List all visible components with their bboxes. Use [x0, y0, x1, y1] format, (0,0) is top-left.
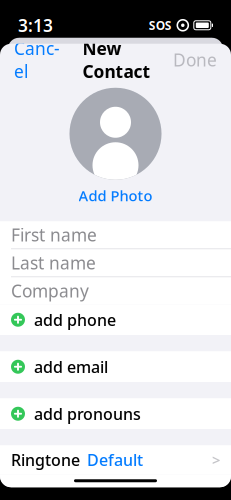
button[interactable]: Ringtone	[0, 445, 231, 474]
button[interactable]: Last name	[0, 249, 231, 276]
button[interactable]: Done	[163, 41, 227, 78]
staticText: Company	[11, 279, 89, 302]
button[interactable]: First name	[0, 221, 231, 248]
button[interactable]: Cancel	[4, 30, 70, 90]
staticText: Ringtone	[11, 449, 80, 470]
staticText: Done	[173, 48, 217, 71]
button[interactable]: Company	[0, 277, 231, 304]
staticText: add phone	[34, 309, 116, 330]
staticText: add pronouns	[34, 403, 141, 424]
staticText: SOS	[149, 17, 172, 33]
button[interactable]: add phone	[0, 304, 231, 335]
staticText: Add Photo	[78, 186, 152, 205]
staticText: Default	[87, 449, 143, 470]
staticText: >	[212, 450, 220, 469]
staticText: add email	[34, 356, 108, 377]
staticText: New Contact	[82, 37, 150, 83]
staticText: Last name	[11, 251, 96, 274]
button[interactable]: Add Photo	[69, 88, 161, 205]
staticText: 3:13	[18, 14, 53, 37]
button[interactable]: add email	[0, 351, 231, 382]
button[interactable]: add pronouns	[0, 398, 231, 429]
staticText: First name	[11, 223, 97, 246]
staticText: Cancel	[14, 37, 60, 83]
